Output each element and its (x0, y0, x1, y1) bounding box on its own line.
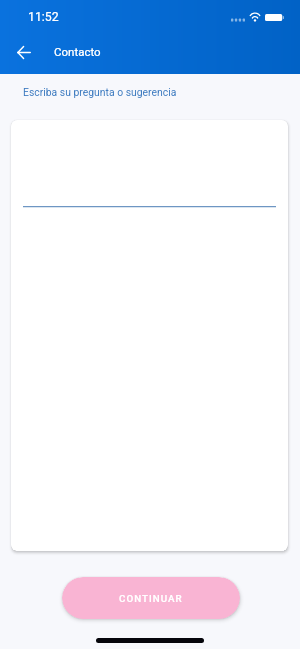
staticText: Escriba su pregunta o sugerencia (23, 86, 177, 98)
staticText: CONTINUAR (119, 593, 183, 604)
staticText: Contacto (54, 45, 101, 58)
button[interactable]: CONTINUAR (62, 577, 240, 619)
button[interactable] (11, 120, 288, 551)
staticText: 11:52 (28, 10, 59, 24)
button[interactable]: Back (10, 37, 38, 65)
